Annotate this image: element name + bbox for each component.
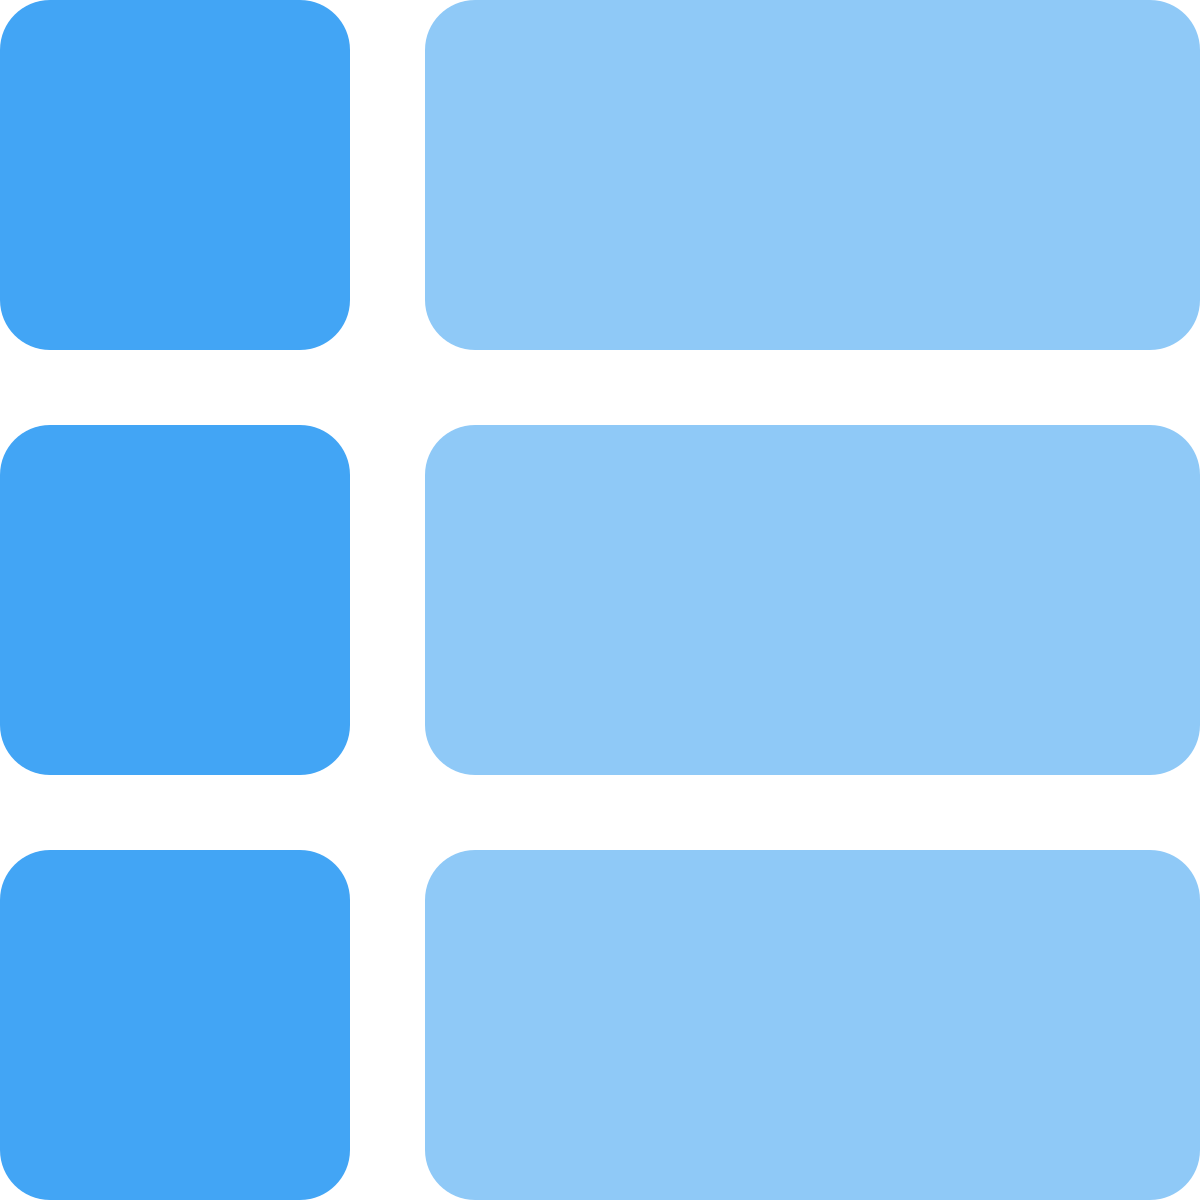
button[interactable]: Second item [0, 425, 1200, 775]
button[interactable]: First item [0, 0, 1200, 350]
button[interactable]: Third item [0, 850, 1200, 1200]
